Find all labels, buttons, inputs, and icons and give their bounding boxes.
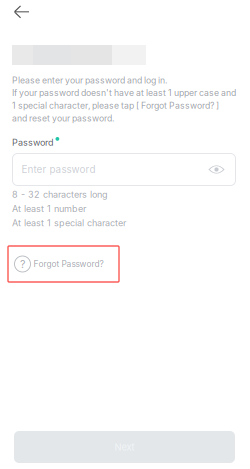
staticText: At least 1 special character xyxy=(12,217,126,228)
button[interactable]: ? xyxy=(8,246,119,282)
staticText: Enter password xyxy=(21,163,95,175)
staticText: At least 1 number xyxy=(12,203,86,214)
staticText: 8 - 32 characters long xyxy=(12,189,108,200)
button[interactable]: Back xyxy=(0,0,56,29)
staticText: and reset your password. xyxy=(12,113,114,124)
staticText: Forgot Password? xyxy=(33,259,103,269)
staticText: 1 special character, please tap [ Forgot… xyxy=(12,100,219,111)
staticText: Next xyxy=(114,441,134,453)
staticText: ? xyxy=(20,257,25,270)
staticText: Please enter your password and log in. xyxy=(12,75,167,85)
button[interactable]: Show password xyxy=(205,158,227,180)
staticText: Password xyxy=(12,137,54,148)
staticText: If your password doesn't have at least 1… xyxy=(12,88,236,98)
